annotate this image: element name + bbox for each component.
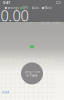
staticText: Long Press — [24, 70, 39, 73]
staticText: To Pause — [26, 74, 38, 77]
staticText: Settings — [7, 6, 18, 10]
button[interactable]: Legal — [0, 90, 11, 94]
button[interactable]: Long Press — [21, 62, 43, 84]
staticText: 00:00 0'00" — [41, 22, 61, 25]
button[interactable]: Settings — [5, 6, 20, 10]
staticText: 9:41 — [3, 0, 10, 5]
button[interactable]: Music — [42, 6, 57, 10]
staticText: GPS — [22, 6, 27, 10]
staticText: 0.00 — [0, 6, 28, 25]
staticText: Music — [44, 6, 51, 10]
staticText: mi — [28, 22, 32, 25]
staticText: Legal — [2, 90, 9, 94]
staticText: Auto — [32, 6, 39, 10]
